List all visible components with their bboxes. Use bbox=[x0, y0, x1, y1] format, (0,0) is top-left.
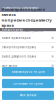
staticText: Выберите услугу bbox=[2, 28, 23, 31]
button[interactable]: Записаться на приём bbox=[2, 79, 54, 88]
staticText: Вызов врача на дом bbox=[2, 36, 31, 40]
button[interactable]: Вызов дежурного врача bbox=[0, 52, 56, 61]
staticText: на приём к специалисту врача bbox=[1, 17, 51, 28]
staticText: Вызов врача на дом и запись bbox=[1, 6, 45, 17]
button[interactable]: Вызвать врача на дом bbox=[2, 67, 54, 76]
button[interactable]: Мои записи bbox=[2, 91, 54, 100]
button[interactable]: Запись на приём к врачу bbox=[0, 43, 56, 52]
staticText: Электронная регистратура bbox=[2, 6, 39, 10]
button[interactable]: Вызов врача на дом bbox=[0, 33, 56, 43]
staticText: Вызов дежурного врача bbox=[2, 55, 36, 58]
staticText: Мои записи bbox=[19, 93, 36, 97]
staticText: Запись на приём к врачу bbox=[2, 45, 36, 49]
staticText: поликлиники вашего района bbox=[1, 29, 42, 33]
staticText: Мои записи bbox=[2, 64, 18, 67]
button[interactable]: Мои записи bbox=[0, 61, 56, 70]
staticText: Вызвать врача на дом bbox=[11, 70, 44, 73]
staticText: Записаться на приём bbox=[13, 82, 43, 85]
